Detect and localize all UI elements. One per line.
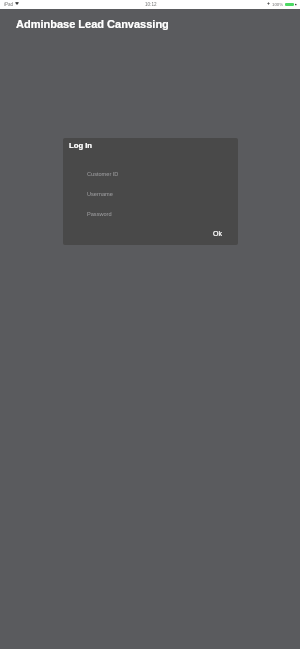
staticText: Log In — [69, 141, 93, 150]
button[interactable]: Customer ID — [87, 168, 227, 179]
button[interactable]: Username — [87, 188, 227, 199]
staticText: Password — [87, 211, 112, 217]
staticText: 10:12 — [145, 2, 157, 7]
other: Battery full — [285, 3, 297, 6]
staticText: Adminbase Lead Canvassing — [16, 18, 169, 30]
other: Wi-Fi — [15, 2, 19, 5]
staticText: iPad — [4, 2, 14, 7]
button[interactable]: Ok — [204, 226, 230, 242]
staticText: Ok — [213, 230, 222, 238]
other: Charging — [267, 2, 270, 5]
staticText: Username — [87, 191, 113, 197]
staticText: 100% — [272, 2, 284, 7]
button[interactable]: Password — [87, 208, 227, 219]
staticText: Customer ID — [87, 171, 119, 177]
